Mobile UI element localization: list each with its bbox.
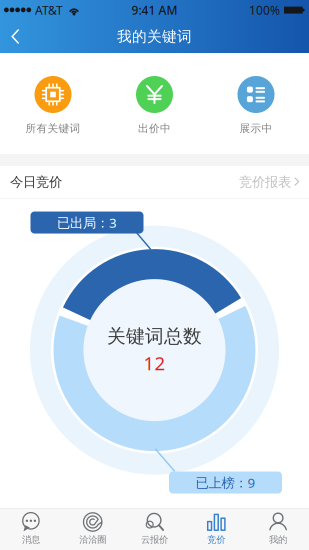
staticText: 云报价 [141, 534, 168, 545]
button[interactable]: 消息 [0, 509, 62, 550]
staticText: 100% [249, 2, 280, 18]
button[interactable]: 展示中 [215, 53, 297, 154]
button[interactable]: 竞价 [185, 509, 247, 550]
staticText: 9:41 AM [131, 2, 177, 18]
button[interactable]: 我的 [247, 509, 309, 550]
staticText: 展示中 [239, 122, 272, 135]
staticText: 已出局：3 [57, 214, 117, 231]
staticText: 所有关键词 [25, 122, 80, 135]
staticText: 今日竞价 [10, 174, 62, 190]
staticText: 竞价报表 [239, 174, 291, 190]
staticText: 消息 [22, 534, 40, 545]
staticText: 竞价 [207, 534, 225, 545]
button[interactable]: 洽洽圈 [62, 509, 124, 550]
staticText: 洽洽圈 [79, 534, 106, 545]
staticText: 我的 [269, 534, 287, 545]
button[interactable]: 出价中 [113, 53, 195, 154]
button[interactable]: 竞价报表 [239, 174, 300, 190]
button[interactable]: Back [0, 20, 36, 53]
staticText: 关键词总数 [107, 325, 202, 348]
button[interactable]: 云报价 [124, 509, 185, 550]
staticText: AT&T [35, 2, 63, 18]
staticText: 出价中 [138, 122, 171, 135]
staticText: 我的关键词 [117, 27, 192, 45]
staticText: 已上榜：9 [195, 474, 255, 491]
button[interactable]: 所有关键词 [12, 53, 94, 154]
staticText: 12 [143, 351, 165, 375]
